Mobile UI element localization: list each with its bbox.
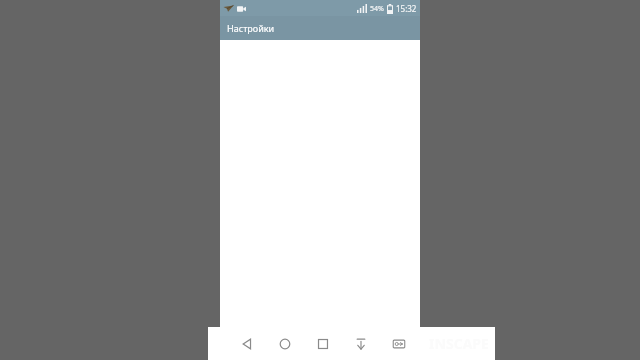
button[interactable]: Screen capture	[380, 332, 418, 356]
button[interactable]: Hide navigation bar	[342, 332, 380, 356]
button[interactable]: Back	[228, 332, 266, 356]
staticText: 15:32	[396, 3, 417, 14]
button[interactable]: Recent apps	[304, 332, 342, 356]
staticText: 54%	[370, 4, 384, 14]
button[interactable]: Настройки	[220, 16, 420, 40]
button[interactable]: Home	[266, 332, 304, 356]
staticText: Настройки	[227, 22, 275, 34]
